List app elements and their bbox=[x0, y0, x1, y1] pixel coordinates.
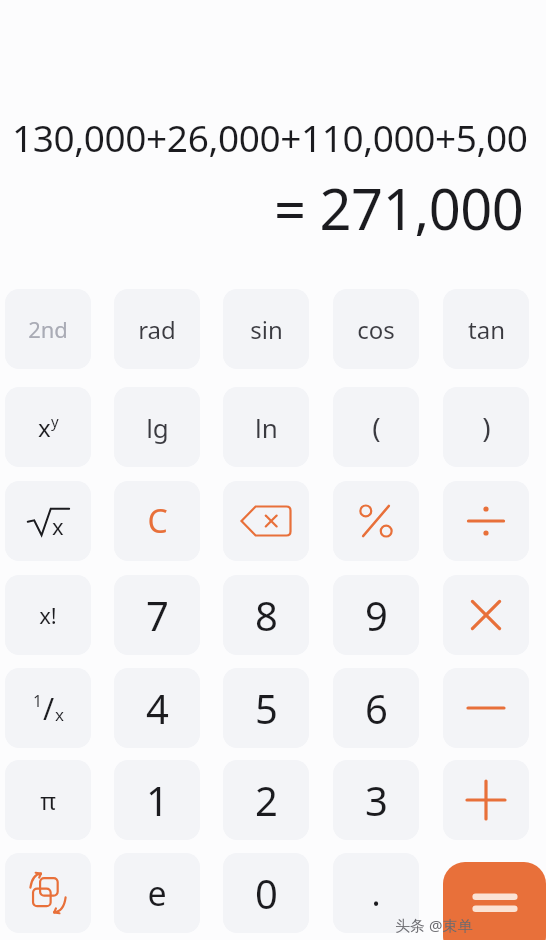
staticText: lg bbox=[146, 410, 169, 445]
button[interactable]: 5 bbox=[223, 668, 309, 748]
staticText: ( bbox=[372, 408, 381, 446]
button[interactable]: 9 bbox=[333, 575, 419, 655]
staticText: e bbox=[147, 870, 167, 916]
staticText: tan bbox=[468, 313, 505, 346]
staticText: x! bbox=[39, 600, 57, 630]
staticText: 头条 @束单 bbox=[395, 915, 473, 935]
staticText: 2 bbox=[255, 773, 278, 827]
button[interactable]: Multiply bbox=[443, 575, 529, 655]
staticText: sin bbox=[250, 313, 283, 346]
staticText: rad bbox=[138, 313, 176, 346]
button[interactable]: 2 bbox=[223, 760, 309, 840]
button[interactable]: ( bbox=[333, 387, 419, 467]
staticText: x bbox=[55, 703, 64, 726]
button[interactable]: rad bbox=[114, 289, 200, 369]
staticText: cos bbox=[357, 313, 395, 346]
button[interactable]: ln bbox=[223, 387, 309, 467]
button[interactable]: Backspace bbox=[223, 481, 309, 561]
staticText: ln bbox=[255, 410, 278, 445]
staticText: 9 bbox=[365, 588, 388, 642]
button[interactable]: cos bbox=[333, 289, 419, 369]
button[interactable]: 2nd bbox=[5, 289, 91, 369]
staticText: x bbox=[38, 411, 51, 444]
button[interactable]: Square root bbox=[5, 481, 91, 561]
button[interactable]: Divide bbox=[443, 481, 529, 561]
button[interactable]: Percent bbox=[333, 481, 419, 561]
button[interactable]: 3 bbox=[333, 760, 419, 840]
staticText: 1 bbox=[146, 773, 169, 827]
button[interactable]: C bbox=[114, 481, 200, 561]
button[interactable]: 1 bbox=[5, 668, 91, 748]
button[interactable]: π bbox=[5, 760, 91, 840]
button[interactable]: 7 bbox=[114, 575, 200, 655]
button[interactable]: Unit converter bbox=[5, 853, 91, 933]
button[interactable]: Minus bbox=[443, 668, 529, 748]
staticText: y bbox=[51, 411, 59, 431]
staticText: 0 bbox=[255, 866, 278, 920]
staticText: 5 bbox=[255, 681, 278, 735]
staticText: C bbox=[147, 499, 168, 543]
staticText: 1 bbox=[33, 690, 43, 712]
button[interactable]: 6 bbox=[333, 668, 419, 748]
staticText: 3 bbox=[365, 773, 388, 827]
button[interactable]: Equals bbox=[443, 862, 546, 940]
button[interactable]: ) bbox=[443, 387, 529, 467]
staticText: 7 bbox=[146, 588, 169, 642]
staticText: x bbox=[52, 511, 64, 541]
button[interactable]: sin bbox=[223, 289, 309, 369]
staticText: ) bbox=[482, 408, 491, 446]
button[interactable]: x! bbox=[5, 575, 91, 655]
button[interactable]: . bbox=[333, 853, 419, 933]
staticText: 4 bbox=[146, 681, 169, 735]
staticText: π bbox=[40, 784, 56, 817]
staticText: 2nd bbox=[28, 314, 68, 344]
button[interactable]: Plus bbox=[443, 760, 529, 840]
button[interactable]: x bbox=[5, 387, 91, 467]
staticText: . bbox=[371, 870, 381, 916]
staticText: / bbox=[43, 688, 55, 729]
staticText: 8 bbox=[255, 588, 278, 642]
staticText: = 271,000 bbox=[274, 170, 524, 236]
button[interactable]: 4 bbox=[114, 668, 200, 748]
staticText: 130,000+26,000+110,000+5,000 bbox=[12, 112, 534, 164]
staticText: 6 bbox=[365, 681, 388, 735]
button[interactable]: 0 bbox=[223, 853, 309, 933]
button[interactable]: tan bbox=[443, 289, 529, 369]
button[interactable]: lg bbox=[114, 387, 200, 467]
button[interactable]: e bbox=[114, 853, 200, 933]
button[interactable]: 1 bbox=[114, 760, 200, 840]
button[interactable]: 8 bbox=[223, 575, 309, 655]
